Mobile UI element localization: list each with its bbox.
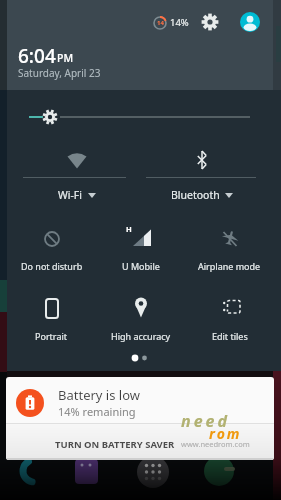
button[interactable]: TURN ON BATTERY SAVER bbox=[6, 424, 274, 460]
staticText: 6:04 bbox=[18, 43, 56, 69]
staticText: TURN ON BATTERY SAVER bbox=[55, 438, 175, 451]
button[interactable]: High accuracy bbox=[96, 285, 185, 347]
staticText: Portrait bbox=[35, 330, 68, 342]
staticText: need bbox=[181, 410, 230, 432]
button[interactable]: H bbox=[96, 215, 185, 277]
button[interactable]: Battery is low bbox=[6, 377, 274, 460]
staticText: 14 bbox=[157, 19, 164, 27]
button[interactable]: Bluetooth bbox=[141, 140, 275, 206]
staticText: U Mobile bbox=[122, 260, 160, 272]
staticText: Edit tiles bbox=[212, 330, 248, 342]
button[interactable] bbox=[240, 12, 260, 32]
button[interactable]: Portrait bbox=[7, 285, 96, 347]
staticText: rom bbox=[209, 424, 242, 443]
staticText: Airplane mode bbox=[198, 260, 261, 272]
button[interactable]: Do not disturb bbox=[7, 215, 96, 277]
button[interactable]: Wi-Fi bbox=[7, 140, 141, 206]
staticText: Battery is low bbox=[58, 386, 140, 404]
staticText: Do not disturb bbox=[21, 260, 83, 272]
staticText: Bluetooth bbox=[171, 188, 220, 202]
staticText: H bbox=[126, 224, 132, 234]
staticText: 14% remaining bbox=[58, 404, 136, 419]
button[interactable]: Edit tiles bbox=[185, 285, 274, 347]
staticText: PM bbox=[57, 51, 74, 65]
button[interactable]: Airplane mode bbox=[185, 215, 274, 277]
staticText: www.needrom.com bbox=[181, 439, 250, 449]
staticText: Wi-Fi bbox=[58, 188, 83, 202]
staticText: Saturday, April 23 bbox=[18, 66, 101, 80]
staticText: 14% bbox=[170, 16, 189, 29]
staticText: High accuracy bbox=[111, 330, 171, 342]
button[interactable] bbox=[201, 13, 219, 31]
